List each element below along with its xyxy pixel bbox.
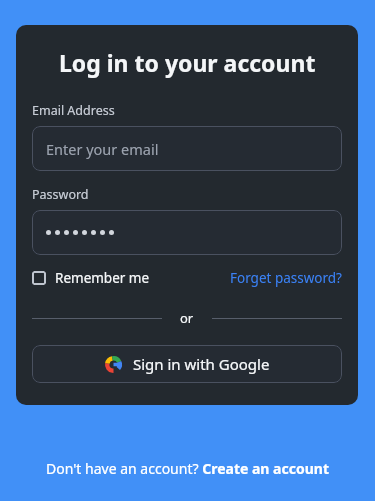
staticText: Log in to your account xyxy=(59,47,316,78)
staticText: Remember me xyxy=(55,269,150,287)
button[interactable]: Remember me xyxy=(32,266,150,290)
button[interactable]: Don't have an account? Create an account xyxy=(42,455,333,482)
staticText: Sign in with Google xyxy=(133,354,270,374)
other: Google logo xyxy=(105,356,122,373)
staticText: Forget password? xyxy=(230,269,342,287)
staticText: or xyxy=(180,309,194,327)
staticText: Enter your email xyxy=(46,139,159,159)
staticText: Don't have an account? Create an account xyxy=(46,459,329,478)
staticText: Password xyxy=(32,186,89,203)
button[interactable]: Forget password? xyxy=(230,266,342,290)
button[interactable]: Google logo xyxy=(32,345,342,383)
staticText: Email Address xyxy=(32,102,115,119)
button[interactable]: Enter your email xyxy=(32,126,342,171)
button[interactable] xyxy=(32,210,342,255)
